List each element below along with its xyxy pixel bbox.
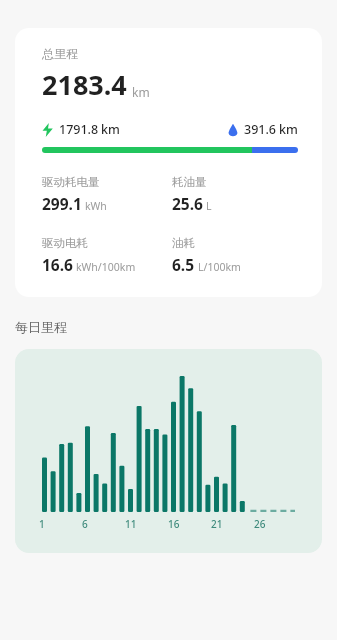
staticText: L/100km	[198, 260, 241, 274]
button[interactable]: 总里程	[15, 28, 322, 297]
button[interactable]: 1	[15, 349, 322, 553]
staticText: 26	[254, 517, 266, 531]
staticText: 耗油量	[172, 175, 207, 189]
staticText: kWh	[85, 199, 107, 213]
staticText: km	[101, 121, 120, 138]
staticText: 11	[125, 517, 137, 531]
staticText: km	[132, 84, 150, 100]
staticText: 总里程	[42, 46, 78, 61]
staticText: km	[279, 121, 298, 138]
staticText: 6	[82, 517, 88, 531]
other: Fuel	[228, 123, 238, 137]
staticText: 16.6	[42, 254, 73, 275]
staticText: 驱动电耗	[42, 236, 88, 250]
staticText: 1	[39, 517, 45, 531]
staticText: 油耗	[172, 236, 195, 250]
staticText: L	[206, 199, 212, 213]
staticText: 299.1	[42, 193, 82, 214]
staticText: 21	[211, 517, 223, 531]
staticText: kWh/100km	[76, 260, 136, 274]
staticText: 驱动耗电量	[42, 175, 100, 189]
staticText: 每日里程	[15, 319, 67, 335]
staticText: 2183.4	[42, 66, 127, 103]
staticText: 6.5	[172, 254, 195, 275]
staticText: 391.6	[244, 121, 277, 138]
other: Electric	[42, 123, 53, 137]
staticText: 1791.8	[59, 121, 99, 138]
staticText: 25.6	[172, 193, 203, 214]
staticText: 16	[168, 517, 180, 531]
